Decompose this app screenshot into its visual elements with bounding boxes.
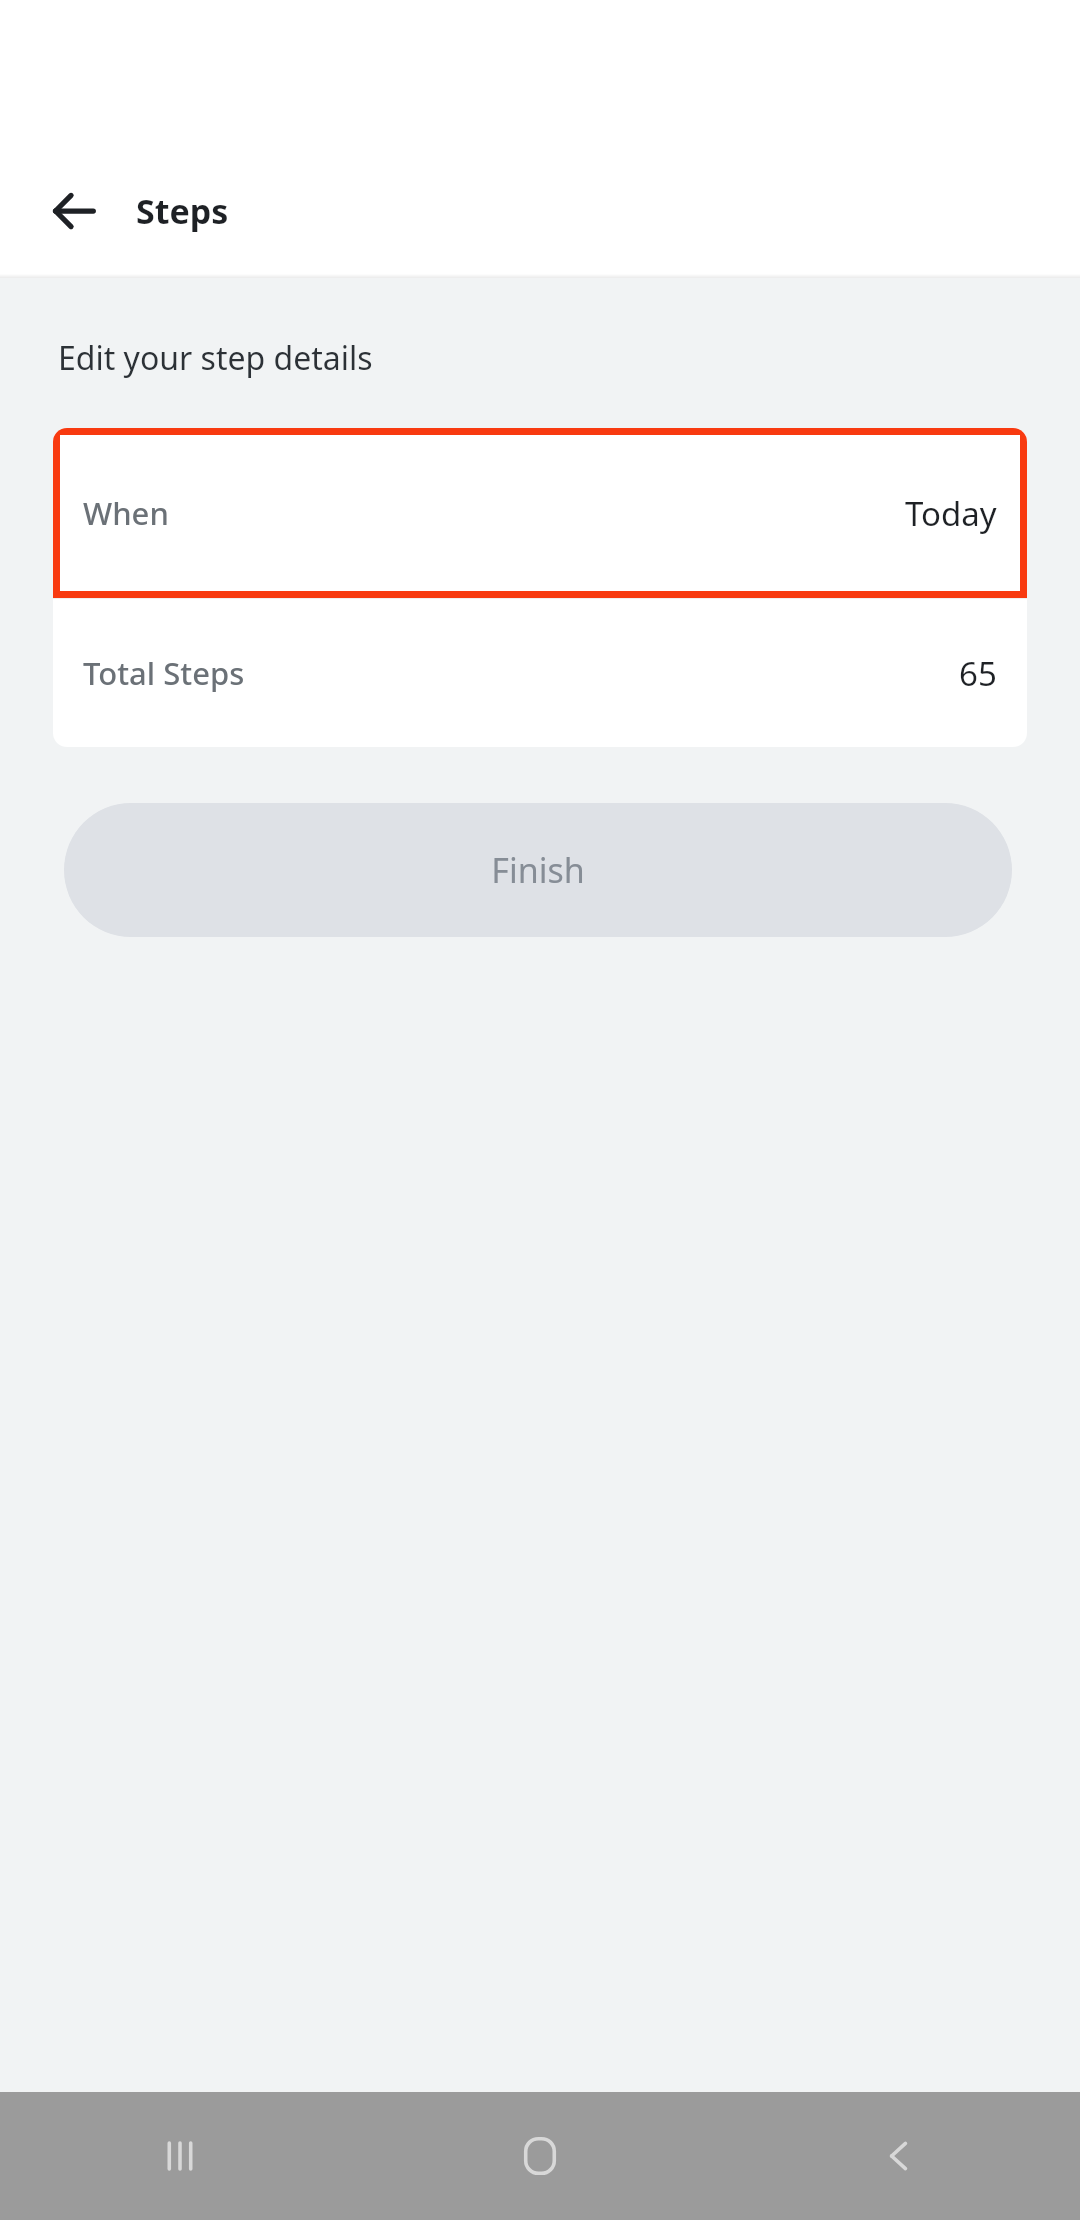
staticText: When [83,492,169,534]
button[interactable]: Back [720,2092,1080,2220]
staticText: 65 [959,651,997,696]
button[interactable]: Finish [64,803,1012,937]
button[interactable]: Home [360,2092,720,2220]
staticText: Steps [136,188,229,234]
staticText: Finish [491,847,585,893]
staticText: Total Steps [83,652,245,694]
button[interactable]: Back [38,182,110,240]
button[interactable]: When [53,428,1027,598]
button[interactable]: Total Steps [53,599,1027,747]
button[interactable]: Recent apps [0,2092,360,2220]
staticText: Edit your step details [58,336,373,380]
staticText: Today [905,491,997,536]
